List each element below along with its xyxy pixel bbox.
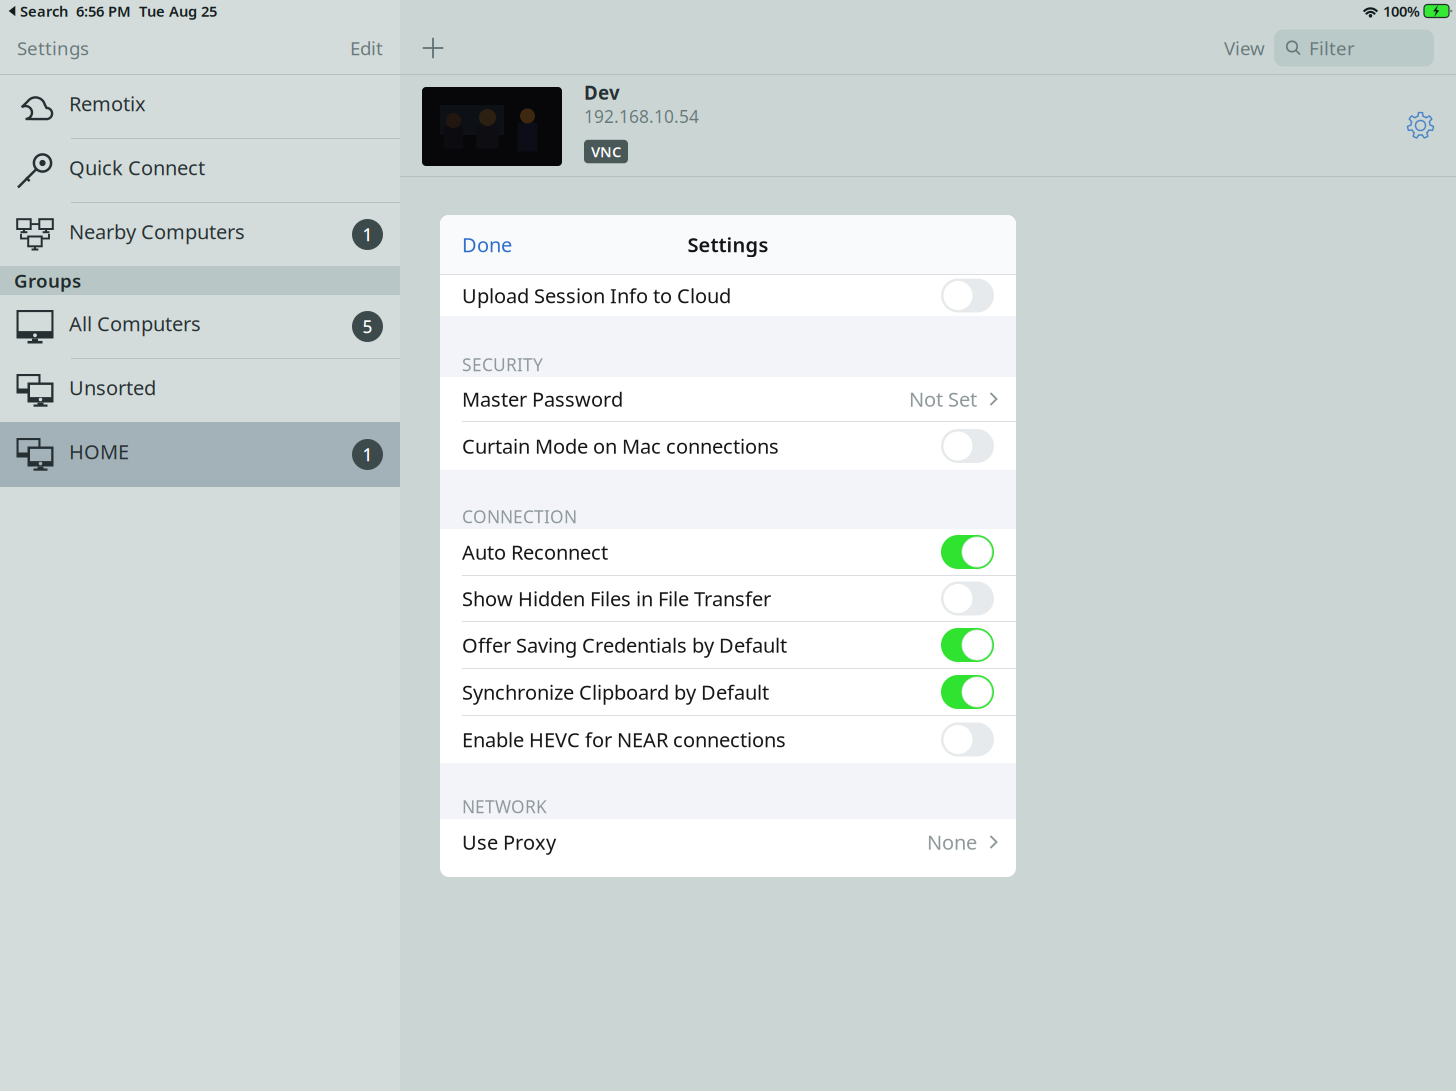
staticText: Settings xyxy=(687,231,768,258)
staticText: Offer Saving Credentials by Default xyxy=(462,632,787,658)
button[interactable]: Remotix xyxy=(0,75,400,139)
staticText: Enable HEVC for NEAR connections xyxy=(462,726,786,753)
staticText: Curtain Mode on Mac connections xyxy=(462,433,779,459)
button[interactable]: Auto Reconnect xyxy=(440,529,1016,576)
staticText: Use Proxy xyxy=(462,829,556,855)
button[interactable]: Show Hidden Files in File Transfer xyxy=(440,576,1016,622)
staticText: Tue Aug 25 xyxy=(139,1,217,21)
staticText: VNC xyxy=(591,142,621,161)
staticText: Groups xyxy=(14,268,81,293)
button[interactable]: Synchronize Clipboard by Default xyxy=(440,669,1016,716)
button[interactable]: Edit xyxy=(350,22,400,74)
staticText: All Computers xyxy=(69,310,201,337)
staticText: 1 xyxy=(362,223,372,246)
staticText: 1 xyxy=(362,443,372,466)
button[interactable]: Use Proxy xyxy=(440,819,1016,865)
button[interactable]: Curtain Mode on Mac connections xyxy=(440,422,1016,470)
staticText: Auto Reconnect xyxy=(462,539,608,565)
button[interactable]: Unsorted xyxy=(0,359,400,422)
staticText: SECURITY xyxy=(462,353,543,376)
button[interactable]: Done xyxy=(440,215,512,274)
staticText: CONNECTION xyxy=(462,505,577,528)
button[interactable]: View xyxy=(1224,22,1265,74)
staticText: Show Hidden Files in File Transfer xyxy=(462,585,771,612)
staticText: None xyxy=(927,829,977,855)
button[interactable]: Master Password xyxy=(440,377,1016,422)
staticText: Unsorted xyxy=(69,374,156,401)
button[interactable]: Nearby Computers xyxy=(0,203,400,266)
staticText: 6:56 PM xyxy=(76,1,131,21)
staticText: Done xyxy=(462,231,512,258)
staticText: Quick Connect xyxy=(69,154,205,181)
staticText: Not Set xyxy=(909,386,977,412)
staticText: Master Password xyxy=(462,386,623,412)
button[interactable]: Add xyxy=(400,22,444,74)
staticText: 5 xyxy=(362,315,372,338)
button[interactable]: Quick Connect xyxy=(0,139,400,203)
button[interactable]: Settings xyxy=(0,22,89,74)
staticText: Edit xyxy=(350,36,383,60)
staticText: Dev xyxy=(584,80,620,105)
staticText: Synchronize Clipboard by Default xyxy=(462,679,769,705)
button[interactable]: Offer Saving Credentials by Default xyxy=(440,622,1016,669)
staticText: Settings xyxy=(17,36,89,60)
staticText: Filter xyxy=(1309,36,1355,60)
button[interactable]: Enable HEVC for NEAR connections xyxy=(440,716,1016,763)
staticText: HOME xyxy=(69,438,129,465)
button[interactable]: HOME xyxy=(0,422,400,487)
staticText: Remotix xyxy=(69,90,146,117)
staticText: NETWORK xyxy=(462,795,547,818)
staticText: 100% xyxy=(1383,1,1420,21)
staticText: Nearby Computers xyxy=(69,218,245,245)
staticText: 192.168.10.54 xyxy=(584,105,699,128)
staticText: View xyxy=(1224,36,1265,60)
button[interactable]: Filter xyxy=(1265,29,1456,66)
staticText: Search xyxy=(20,1,68,21)
button[interactable]: Upload Session Info to Cloud xyxy=(440,275,1016,316)
staticText: Upload Session Info to Cloud xyxy=(462,282,731,309)
button[interactable]: Dev xyxy=(400,75,1456,177)
button[interactable]: All Computers xyxy=(0,295,400,359)
button[interactable]: Settings xyxy=(1407,75,1456,139)
